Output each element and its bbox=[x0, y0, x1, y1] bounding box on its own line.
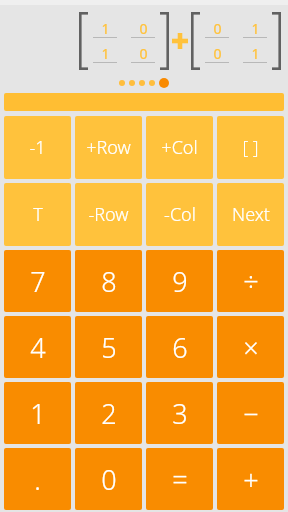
button[interactable]: 0 bbox=[75, 448, 142, 510]
button[interactable]: 7 bbox=[4, 250, 71, 312]
staticText: -1 bbox=[29, 135, 46, 160]
button[interactable]: 8 bbox=[75, 250, 142, 312]
staticText: 0 bbox=[139, 19, 148, 37]
button[interactable]: 4 bbox=[4, 316, 71, 378]
staticText: [ ] bbox=[242, 135, 259, 160]
button[interactable]: T bbox=[4, 183, 71, 246]
button[interactable]: +Col bbox=[146, 116, 213, 179]
staticText: 8 bbox=[101, 263, 117, 300]
staticText: -Row bbox=[88, 202, 129, 227]
staticText: 0 bbox=[213, 44, 222, 62]
button[interactable]: Next bbox=[217, 183, 284, 246]
staticText: Next bbox=[232, 202, 270, 227]
staticText: 6 bbox=[172, 329, 188, 366]
button[interactable]: + bbox=[217, 448, 284, 510]
staticText: +Row bbox=[86, 135, 131, 160]
staticText: 1 bbox=[251, 19, 260, 37]
staticText: +Col bbox=[161, 135, 198, 160]
button[interactable]: = bbox=[146, 448, 213, 510]
staticText: 1 bbox=[251, 44, 260, 62]
staticText: -Col bbox=[164, 202, 196, 227]
button[interactable]: . bbox=[4, 448, 71, 510]
staticText: T bbox=[33, 202, 43, 227]
staticText: × bbox=[243, 329, 259, 366]
button[interactable]: − bbox=[217, 382, 284, 444]
button[interactable]: -Row bbox=[75, 183, 142, 246]
button[interactable]: +Row bbox=[75, 116, 142, 179]
staticText: 0 bbox=[213, 19, 222, 37]
staticText: − bbox=[243, 395, 259, 432]
button[interactable]: ÷ bbox=[217, 250, 284, 312]
button[interactable]: 5 bbox=[75, 316, 142, 378]
staticText: . bbox=[34, 461, 41, 498]
staticText: ÷ bbox=[243, 263, 259, 300]
staticText: 7 bbox=[30, 263, 46, 300]
staticText: 1 bbox=[101, 19, 110, 37]
button[interactable]: 1 bbox=[4, 382, 71, 444]
staticText: 3 bbox=[172, 395, 188, 432]
button[interactable]: 6 bbox=[146, 316, 213, 378]
staticText: 2 bbox=[101, 395, 117, 432]
staticText: 1 bbox=[101, 44, 110, 62]
staticText: 0 bbox=[139, 44, 148, 62]
staticText: 0 bbox=[101, 461, 117, 498]
button[interactable]: 9 bbox=[146, 250, 213, 312]
button[interactable]: 2 bbox=[75, 382, 142, 444]
staticText: 5 bbox=[101, 329, 117, 366]
staticText: 9 bbox=[172, 263, 188, 300]
button[interactable]: -Col bbox=[146, 183, 213, 246]
staticText: = bbox=[172, 461, 188, 498]
button[interactable]: Expression input bbox=[4, 93, 284, 111]
button[interactable]: -1 bbox=[4, 116, 71, 179]
button[interactable]: [ ] bbox=[217, 116, 284, 179]
button[interactable]: × bbox=[217, 316, 284, 378]
staticText: + bbox=[243, 461, 259, 498]
staticText: 4 bbox=[30, 329, 46, 366]
staticText: 1 bbox=[30, 395, 46, 432]
button[interactable]: 3 bbox=[146, 382, 213, 444]
